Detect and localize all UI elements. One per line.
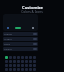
button[interactable]: Color swatch [13, 64, 16, 67]
staticText: Accent [4, 37, 12, 40]
staticText: Layout [4, 47, 12, 50]
staticText: Colors & Icons [21, 10, 43, 14]
button[interactable]: Color swatch [33, 68, 36, 71]
button[interactable]: Color swatch [17, 60, 20, 63]
button[interactable]: Theme [3, 32, 38, 36]
button[interactable]: Color swatch [13, 56, 16, 59]
button[interactable]: Color swatch [9, 64, 12, 67]
button[interactable]: Color swatch [33, 64, 36, 67]
button[interactable]: Icons [3, 42, 38, 46]
button[interactable]: Color swatch [9, 60, 12, 63]
button[interactable]: Color swatch [33, 60, 36, 63]
button[interactable]: Color swatch [25, 56, 28, 59]
button[interactable]: Layout [3, 47, 38, 51]
button[interactable]: Color swatch [21, 60, 24, 63]
button[interactable]: Color swatch [5, 64, 8, 67]
button[interactable]: Color swatch [5, 56, 8, 59]
button[interactable] [3, 14, 38, 31]
button[interactable]: Color swatch [29, 68, 32, 71]
button[interactable]: Color swatch [21, 64, 24, 67]
button[interactable]: Color swatch [13, 60, 16, 63]
button[interactable]: Color swatch [5, 68, 8, 71]
button[interactable]: Color swatch [9, 68, 12, 71]
button[interactable]: Color swatch [9, 56, 12, 59]
button[interactable]: Color swatch [29, 56, 32, 59]
button[interactable]: Color swatch [25, 64, 28, 67]
button[interactable]: Color swatch [25, 68, 28, 71]
button[interactable]: Color swatch [29, 64, 32, 67]
button[interactable]: Color swatch [17, 68, 20, 71]
button[interactable]: Color swatch [5, 60, 8, 63]
button[interactable]: Color swatch [21, 68, 24, 71]
button[interactable]: Color swatch [33, 56, 36, 59]
button[interactable]: Accent [3, 37, 38, 41]
button[interactable]: Color swatch [17, 64, 20, 67]
button[interactable]: Color swatch [21, 56, 24, 59]
button[interactable]: Color swatch [25, 60, 28, 63]
staticText: Icons [4, 42, 11, 45]
staticText: Customize [22, 5, 43, 10]
staticText: Theme [4, 32, 12, 35]
button[interactable]: Color swatch [17, 56, 20, 59]
button[interactable]: Color swatch [29, 60, 32, 63]
button[interactable]: Color swatch [13, 68, 16, 71]
